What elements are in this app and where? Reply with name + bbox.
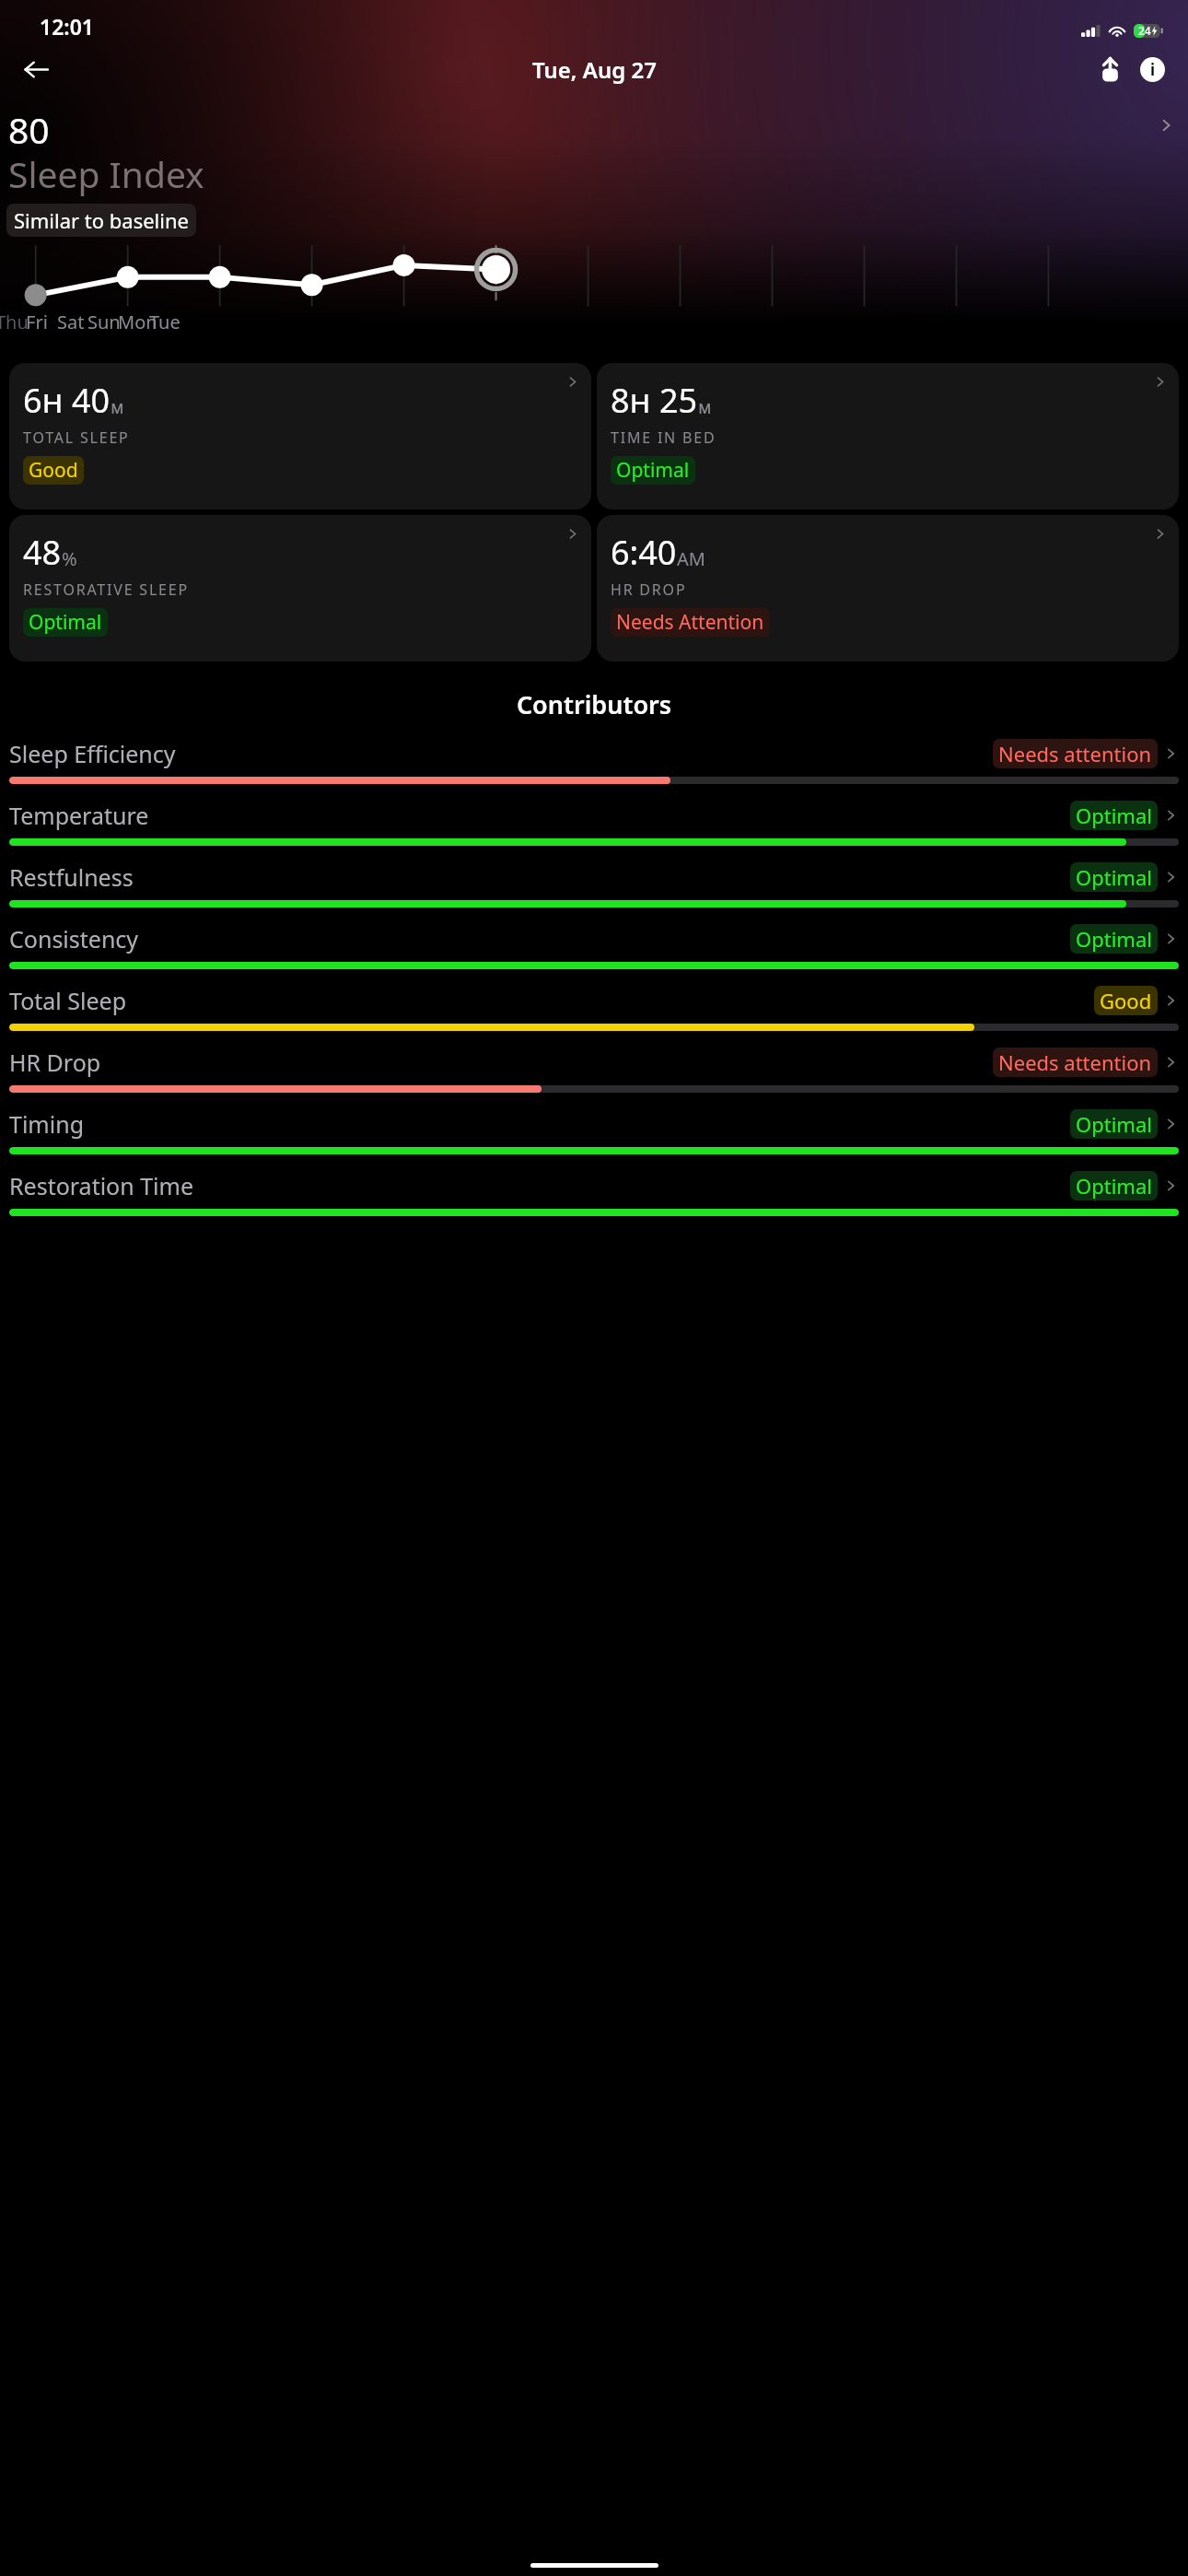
button[interactable]: Sleep Efficiency (0, 738, 1188, 784)
staticText: 6:40 (611, 530, 677, 575)
staticText: Optimal (1076, 863, 1152, 891)
staticText: 8ʜ 25 (611, 378, 698, 423)
button[interactable]: Restfulness (0, 861, 1188, 907)
staticText: HR Drop (9, 1047, 993, 1078)
button[interactable]: Back (14, 47, 58, 91)
staticText: RESTORATIVE SLEEP (23, 580, 189, 600)
staticText: Fri (26, 310, 48, 334)
staticText: 6ʜ 40 (23, 378, 111, 423)
staticText: % (62, 546, 77, 571)
staticText: Good (1100, 987, 1152, 1014)
staticText: Sleep Index (8, 149, 204, 198)
staticText: TIME IN BED (611, 427, 716, 448)
button[interactable]: 80 (0, 94, 1188, 203)
button[interactable]: Temperature (0, 800, 1188, 846)
button[interactable]: Share (1089, 48, 1131, 90)
staticText: Optimal (1076, 802, 1152, 829)
button[interactable]: 6:40 (597, 515, 1179, 662)
staticText: Optimal (1076, 1110, 1152, 1138)
staticText: Needs attention (998, 1048, 1152, 1076)
staticText: Optimal (1076, 925, 1152, 953)
staticText: Consistency (9, 923, 1070, 954)
staticText: Sleep Efficiency (9, 738, 993, 769)
staticText: Temperature (9, 800, 1070, 831)
staticText: Needs Attention (616, 609, 764, 636)
staticText: Restoration Time (9, 1170, 1070, 1201)
staticText: Contributors (0, 687, 1188, 721)
button[interactable]: Information (1131, 48, 1173, 90)
staticText: Timing (9, 1108, 1070, 1140)
button[interactable]: Total Sleep (0, 985, 1188, 1031)
button[interactable]: Consistency (0, 923, 1188, 969)
staticText: Optimal (29, 609, 102, 636)
button[interactable]: 8ʜ 25 (597, 363, 1179, 509)
staticText: HR DROP (611, 580, 687, 600)
button[interactable]: Restoration Time (0, 1170, 1188, 1216)
staticText: ᴍ (698, 394, 712, 419)
staticText: Tue (149, 310, 181, 334)
staticText: Thu (0, 310, 29, 334)
staticText: Sun (87, 310, 121, 334)
staticText: Mon (118, 310, 157, 334)
staticText: Needs attention (998, 740, 1152, 767)
staticText: Total Sleep (9, 985, 1094, 1016)
staticText: TOTAL SLEEP (23, 427, 130, 448)
staticText: Sat (57, 310, 85, 334)
staticText: 48 (23, 530, 62, 575)
button[interactable]: HR Drop (0, 1047, 1188, 1093)
staticText: 24 (1138, 23, 1151, 38)
staticText: Similar to baseline (14, 206, 189, 234)
staticText: 12:01 (40, 12, 94, 41)
staticText: Optimal (1076, 1172, 1152, 1200)
staticText: i (1150, 59, 1156, 80)
button[interactable]: Timing (0, 1108, 1188, 1154)
button[interactable]: 6ʜ 40 (9, 363, 591, 509)
staticText: Optimal (616, 457, 690, 484)
staticText: Tue, Aug 27 (532, 54, 657, 85)
staticText: Restfulness (9, 861, 1070, 893)
staticText: 80 (8, 105, 50, 154)
staticText: Good (29, 457, 78, 484)
staticText: AM (677, 546, 705, 571)
button[interactable]: 48 (9, 515, 591, 662)
staticText: ᴍ (111, 394, 124, 419)
